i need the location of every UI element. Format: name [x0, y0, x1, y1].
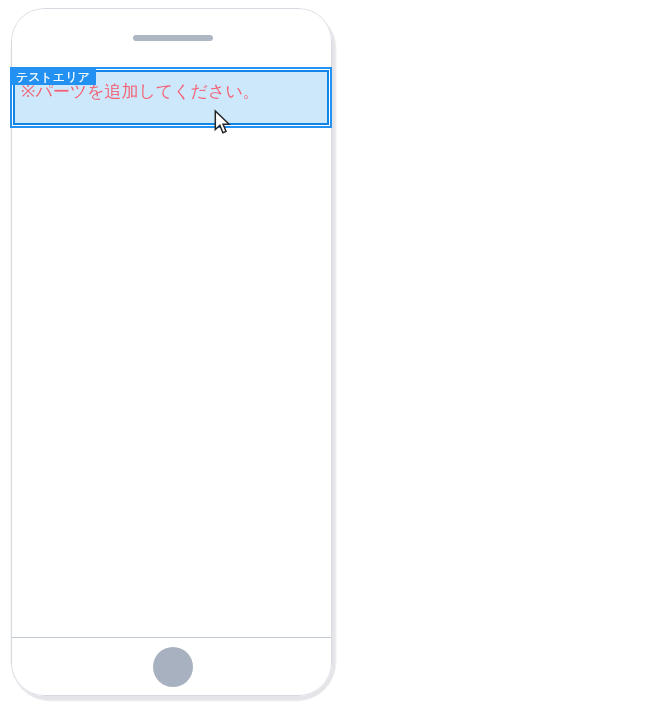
button[interactable]: Home: [153, 647, 193, 687]
button[interactable]: ※パーツを追加してください。: [15, 72, 327, 123]
button[interactable]: テストエリア: [10, 67, 96, 85]
staticText: ※パーツを追加してください。: [21, 79, 260, 102]
staticText: テストエリア: [16, 69, 90, 84]
